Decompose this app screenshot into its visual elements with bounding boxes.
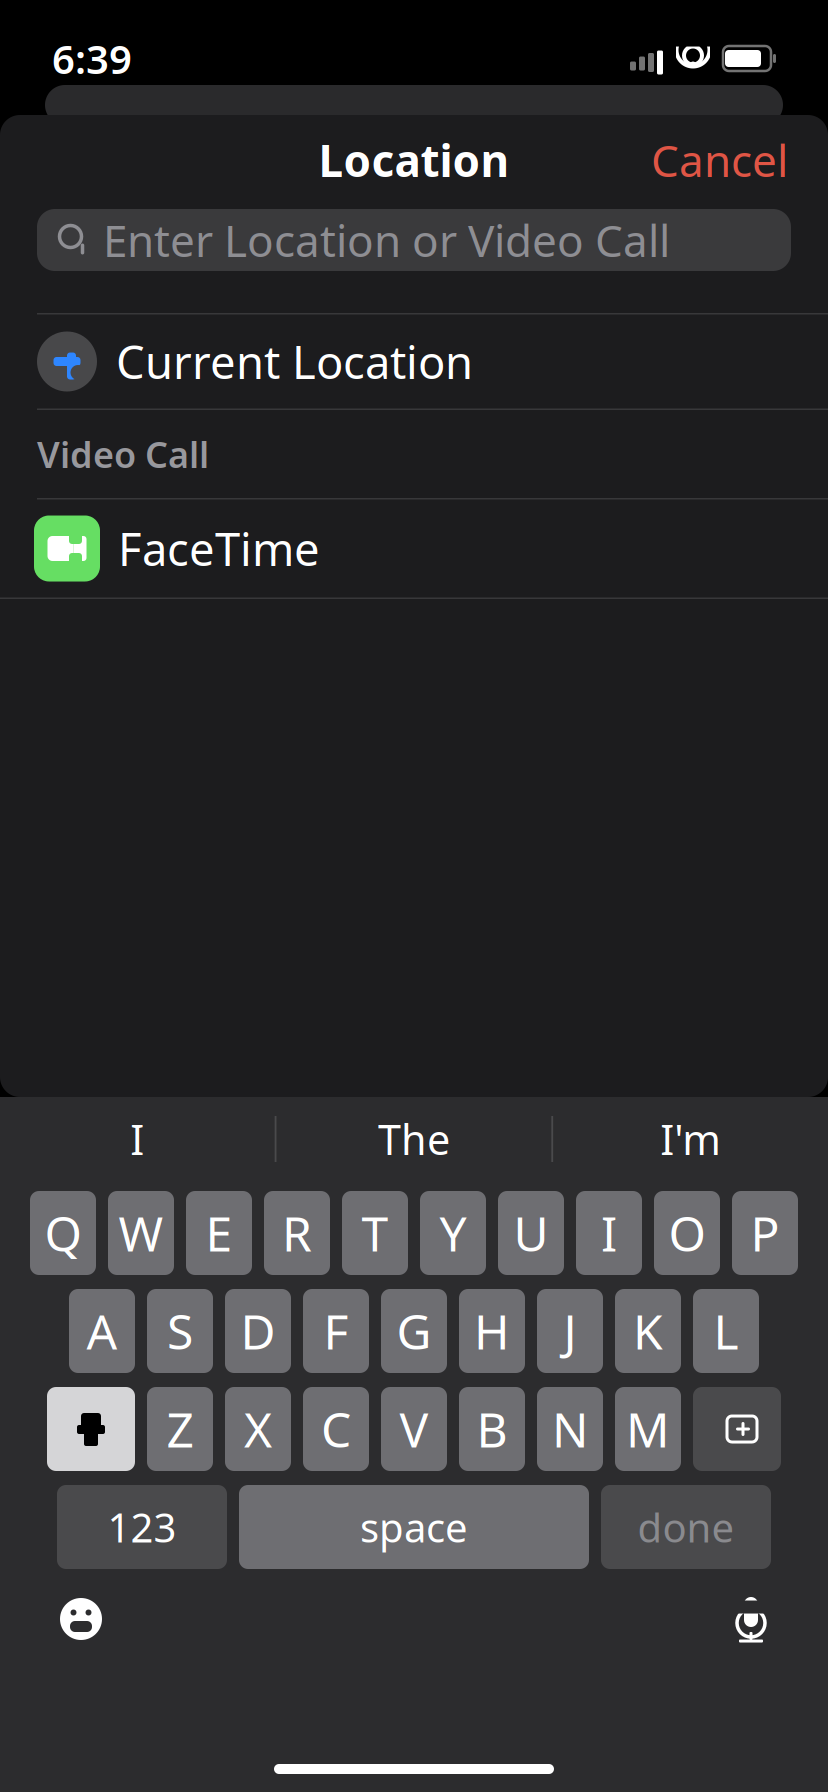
button[interactable]: V: [381, 1387, 447, 1471]
button[interactable]: C: [303, 1387, 369, 1471]
button[interactable]: Emoji: [60, 1598, 102, 1640]
button[interactable]: K: [615, 1289, 681, 1373]
button[interactable]: W: [108, 1191, 174, 1275]
button[interactable]: Shift: [47, 1387, 135, 1471]
staticText: E: [205, 1201, 232, 1265]
staticText: V: [399, 1397, 428, 1461]
staticText: O: [668, 1201, 705, 1265]
button[interactable]: N: [537, 1387, 603, 1471]
staticText: T: [361, 1201, 388, 1265]
staticText: X: [244, 1397, 272, 1461]
button[interactable]: Enter Location or Video Call: [37, 209, 791, 271]
staticText: Cancel: [651, 131, 788, 189]
button[interactable]: done: [601, 1485, 771, 1569]
staticText: U: [513, 1201, 548, 1265]
button[interactable]: O: [654, 1191, 720, 1275]
button[interactable]: Delete: [693, 1387, 781, 1471]
button[interactable]: 123: [57, 1485, 227, 1569]
button[interactable]: Dictation: [734, 1595, 768, 1643]
button[interactable]: FaceTime: [0, 499, 828, 597]
button[interactable]: Q: [30, 1191, 96, 1275]
staticText: I'm: [660, 1112, 721, 1166]
button[interactable]: space: [239, 1485, 589, 1569]
button[interactable]: I: [576, 1191, 642, 1275]
button[interactable]: Current Location: [0, 314, 828, 408]
staticText: R: [282, 1201, 312, 1265]
button[interactable]: U: [498, 1191, 564, 1275]
staticText: F: [323, 1299, 348, 1363]
staticText: A: [86, 1299, 117, 1363]
staticText: Z: [166, 1397, 193, 1461]
button[interactable]: J: [537, 1289, 603, 1373]
button[interactable]: H: [459, 1289, 525, 1373]
button[interactable]: The: [277, 1097, 551, 1181]
button[interactable]: D: [225, 1289, 291, 1373]
staticText: H: [474, 1299, 510, 1363]
staticText: done: [637, 1500, 734, 1553]
button[interactable]: A: [69, 1289, 135, 1373]
staticText: M: [626, 1397, 670, 1461]
button[interactable]: B: [459, 1387, 525, 1471]
staticText: L: [713, 1299, 738, 1363]
staticText: P: [750, 1201, 779, 1265]
staticText: FaceTime: [118, 518, 320, 579]
staticText: space: [360, 1500, 468, 1553]
staticText: Enter Location or Video Call: [103, 211, 670, 269]
button[interactable]: L: [693, 1289, 759, 1373]
button[interactable]: Y: [420, 1191, 486, 1275]
staticText: 6:39: [52, 32, 132, 85]
button[interactable]: I'm: [553, 1097, 828, 1181]
staticText: Q: [44, 1201, 81, 1265]
staticText: Location: [318, 131, 509, 189]
button[interactable]: P: [732, 1191, 798, 1275]
staticText: D: [240, 1299, 275, 1363]
staticText: G: [396, 1299, 431, 1363]
staticText: Current Location: [116, 331, 473, 392]
button[interactable]: G: [381, 1289, 447, 1373]
staticText: 123: [107, 1500, 176, 1553]
staticText: Video Call: [37, 430, 209, 478]
button[interactable]: F: [303, 1289, 369, 1373]
staticText: I: [130, 1112, 144, 1166]
button[interactable]: Cancel: [635, 123, 804, 197]
staticText: C: [321, 1397, 351, 1461]
staticText: The: [378, 1112, 450, 1166]
button[interactable]: X: [225, 1387, 291, 1471]
staticText: S: [167, 1299, 193, 1363]
button[interactable]: M: [615, 1387, 681, 1471]
button[interactable]: R: [264, 1191, 330, 1275]
button[interactable]: Z: [147, 1387, 213, 1471]
staticText: K: [633, 1299, 663, 1363]
button[interactable]: T: [342, 1191, 408, 1275]
button[interactable]: E: [186, 1191, 252, 1275]
staticText: N: [552, 1397, 588, 1461]
staticText: Y: [439, 1201, 466, 1265]
staticText: J: [563, 1299, 576, 1363]
button[interactable]: I: [0, 1097, 275, 1181]
staticText: I: [601, 1201, 617, 1265]
button[interactable]: S: [147, 1289, 213, 1373]
staticText: B: [476, 1397, 507, 1461]
staticText: W: [118, 1201, 163, 1265]
